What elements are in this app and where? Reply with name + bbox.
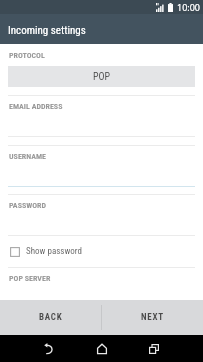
staticText: USERNAME [9,152,46,161]
staticText: EMAIL ADDRESS [9,102,63,111]
staticText: NEXT [141,312,164,323]
button[interactable]: BACK [0,300,101,335]
staticText: BACK [39,312,63,323]
button[interactable]: Show password [10,236,195,267]
staticText: POP [93,71,111,83]
staticText: PROTOCOL [9,51,45,60]
button[interactable]: NEXT [101,300,203,335]
button[interactable]: Recent apps [134,335,174,362]
button[interactable]: Home [82,335,122,362]
staticText: 10:00 [177,1,201,13]
button[interactable]: Back [29,335,69,362]
staticText: Incoming settings [8,24,86,37]
button[interactable]: POP [8,66,195,87]
staticText: PASSWORD [9,201,47,210]
staticText: Show password [26,246,82,257]
staticText: POP SERVER [9,274,51,283]
